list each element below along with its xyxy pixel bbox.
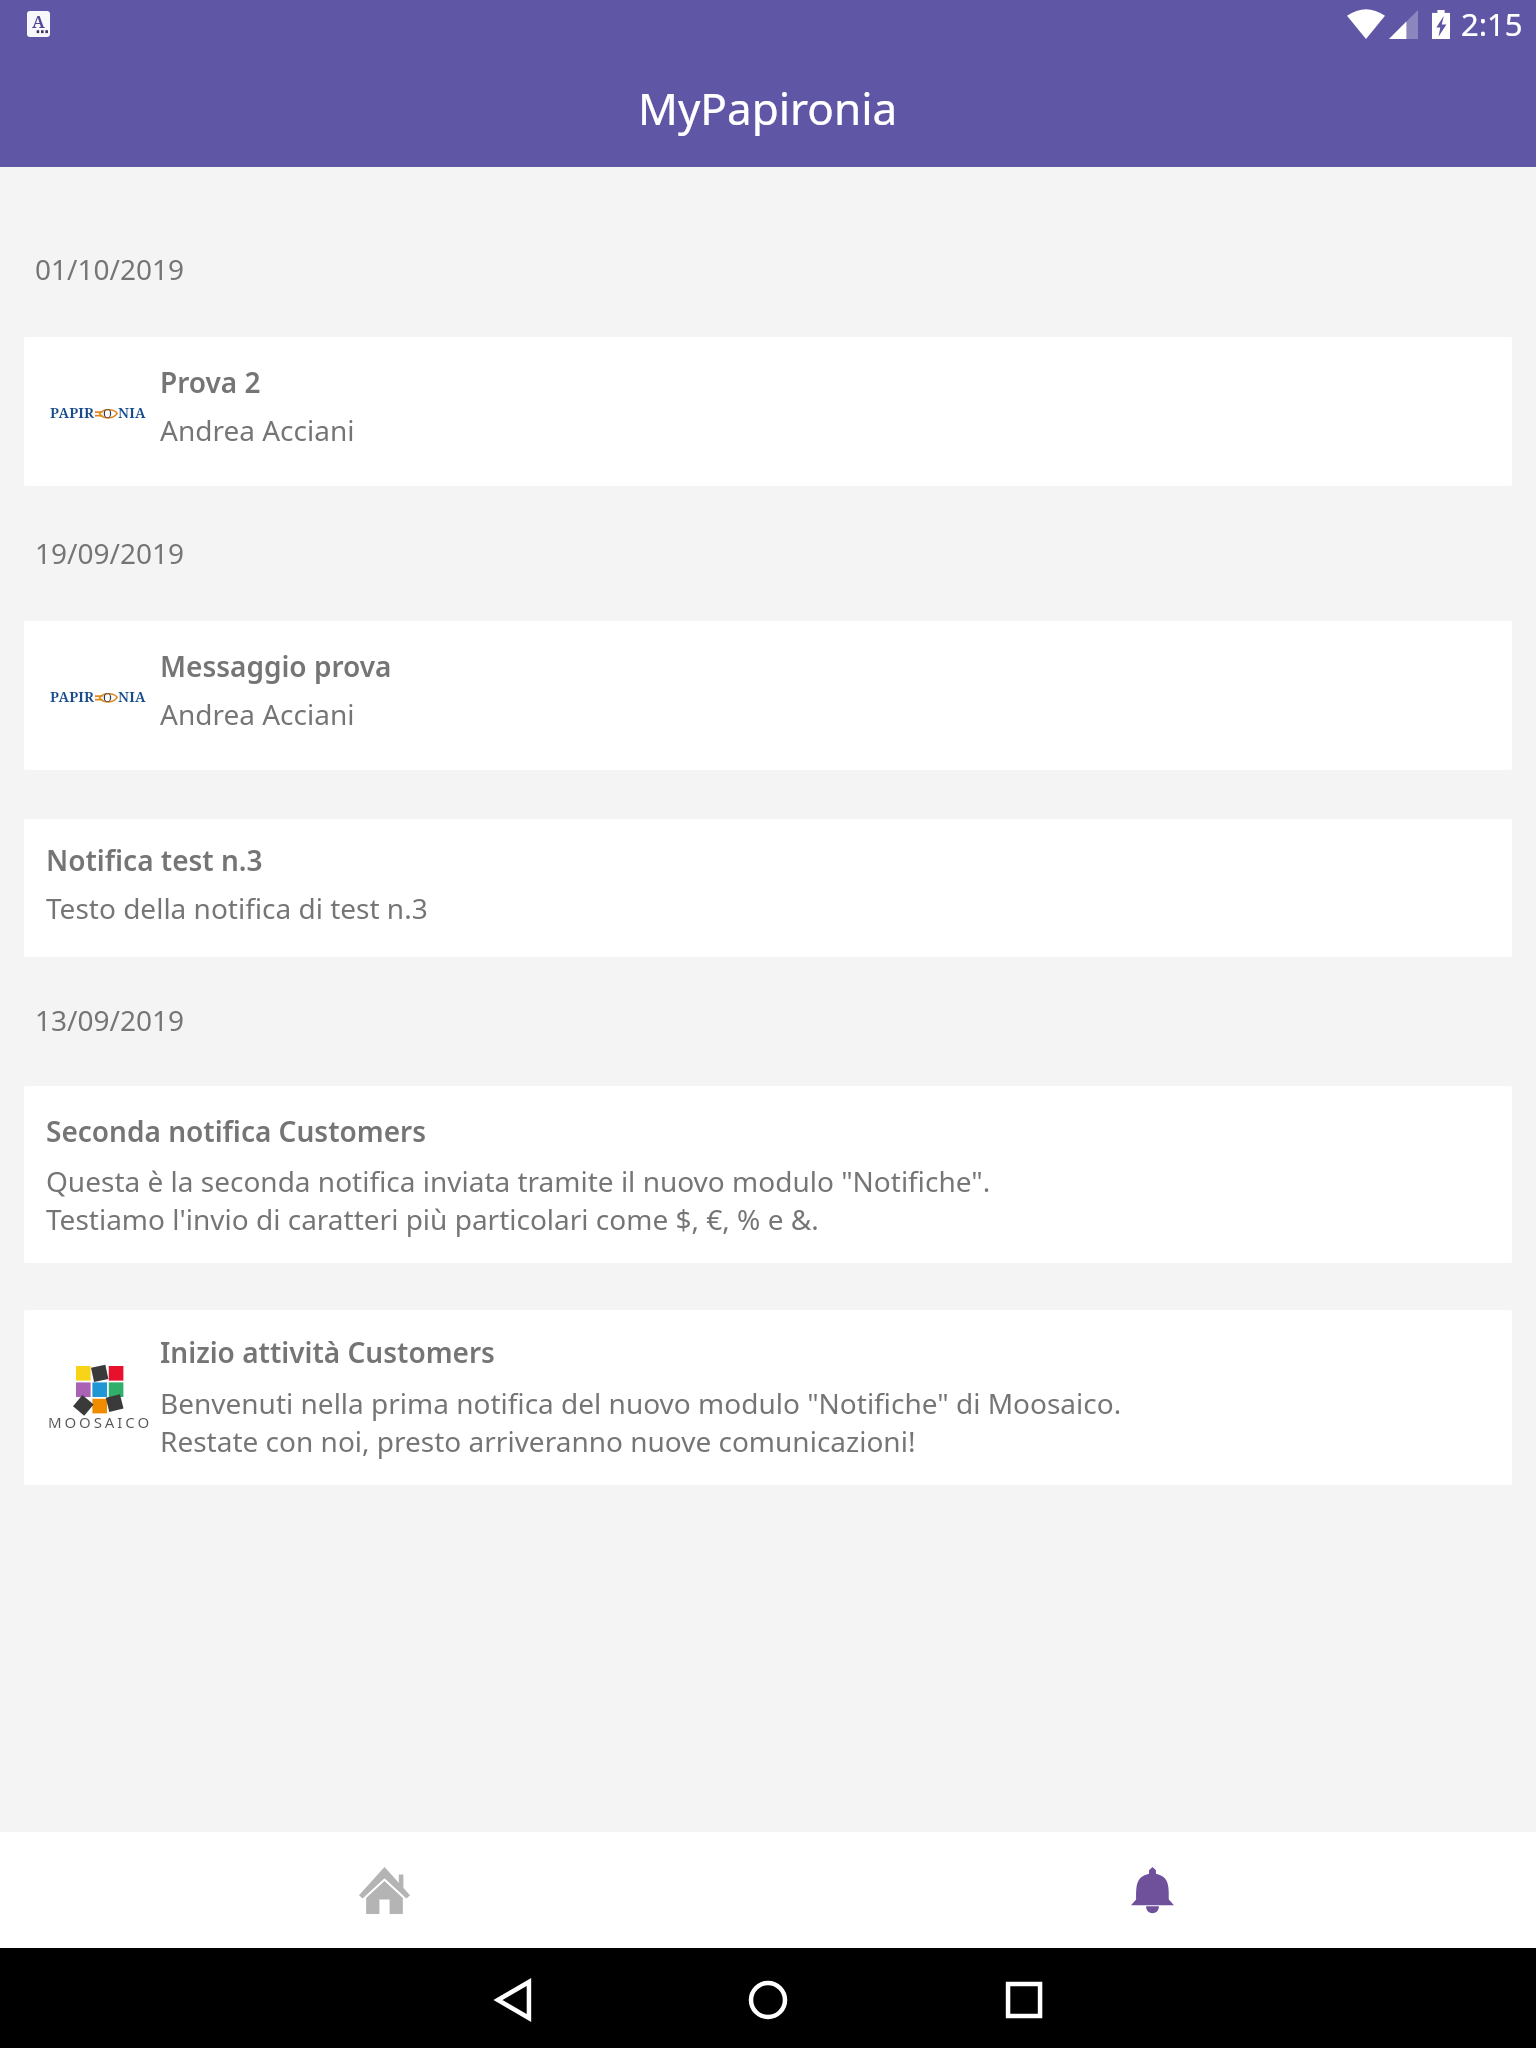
- staticText: Testo della notifica di test n.3: [46, 889, 428, 927]
- staticText: 2:15: [1461, 3, 1523, 45]
- staticText: Questa è la seconda notifica inviata tra…: [46, 1162, 991, 1238]
- staticText: O: [103, 689, 112, 705]
- button[interactable]: Seconda notifica Customers: [24, 1086, 1512, 1263]
- button[interactable]: Notifica test n.3: [24, 819, 1512, 957]
- button[interactable]: Notifications: [768, 1832, 1536, 1948]
- staticText: PAPIR: [50, 403, 95, 422]
- staticText: MyPapironia: [638, 78, 898, 138]
- staticText: O: [103, 405, 112, 421]
- staticText: PAPIR: [50, 687, 95, 706]
- button[interactable]: Home: [0, 1832, 768, 1948]
- staticText: NIA: [118, 687, 146, 706]
- staticText: MOOSAICO: [48, 1412, 153, 1432]
- staticText: Notifica test n.3: [46, 841, 263, 879]
- button[interactable]: PAPIR: [24, 337, 1512, 486]
- button[interactable]: MOOSAICO: [24, 1310, 1512, 1485]
- staticText: Benvenuti nella prima notifica del nuovo…: [160, 1384, 1122, 1460]
- staticText: Inizio attività Customers: [160, 1333, 495, 1371]
- staticText: NIA: [118, 403, 146, 422]
- staticText: Messaggio prova: [160, 647, 392, 685]
- button[interactable]: PAPIR: [24, 621, 1512, 770]
- staticText: Prova 2: [160, 363, 261, 401]
- staticText: Andrea Acciani: [160, 411, 355, 449]
- staticText: Seconda notifica Customers: [46, 1112, 427, 1150]
- staticText: 13/09/2019: [35, 1001, 184, 1039]
- staticText: 19/09/2019: [35, 534, 184, 572]
- staticText: Andrea Acciani: [160, 695, 355, 733]
- staticText: 01/10/2019: [35, 250, 184, 288]
- staticText: A: [32, 11, 45, 33]
